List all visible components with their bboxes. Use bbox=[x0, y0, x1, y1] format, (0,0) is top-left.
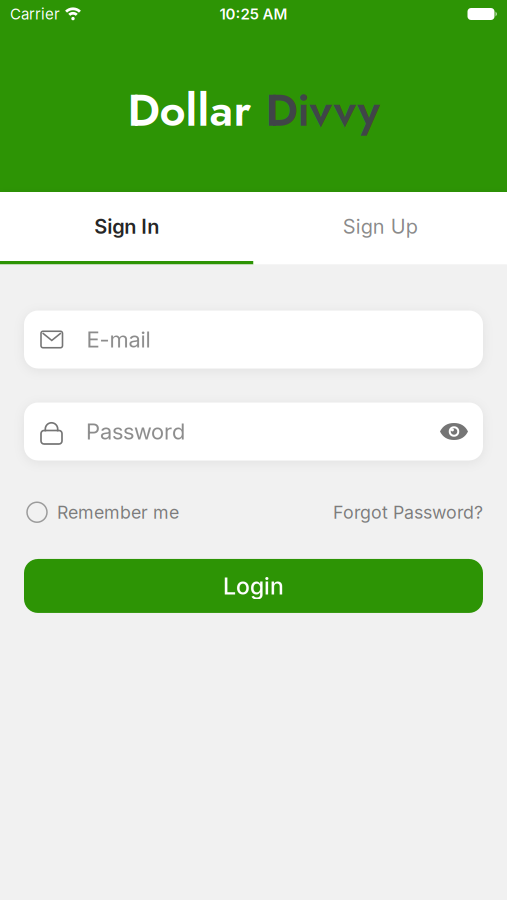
staticText: Forgot Password? bbox=[333, 501, 483, 523]
staticText: E-mail bbox=[86, 326, 150, 353]
staticText: Dollar bbox=[127, 77, 265, 143]
button[interactable]: Show password bbox=[440, 423, 483, 440]
staticText: Sign In bbox=[94, 214, 159, 239]
button[interactable]: Password bbox=[24, 402, 483, 460]
button[interactable]: Login bbox=[24, 559, 483, 613]
staticText: Carrier bbox=[10, 5, 60, 23]
button[interactable]: Forgot Password? bbox=[333, 501, 483, 523]
button[interactable]: Sign In bbox=[0, 192, 253, 261]
staticText: Login bbox=[223, 572, 284, 600]
staticText: Sign Up bbox=[343, 214, 418, 239]
staticText: 10:25 AM bbox=[219, 5, 287, 23]
button[interactable]: Sign Up bbox=[253, 192, 507, 261]
button[interactable]: E-mail bbox=[24, 310, 483, 368]
staticText: Password bbox=[86, 418, 185, 445]
button[interactable]: Remember me bbox=[27, 501, 179, 523]
staticText: Divvy bbox=[265, 77, 379, 143]
staticText: Remember me bbox=[57, 501, 179, 523]
